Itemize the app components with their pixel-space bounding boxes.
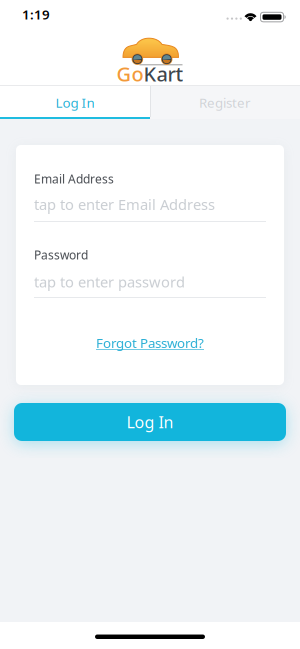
staticText: Log In <box>126 411 173 433</box>
staticText: Kart <box>143 60 183 87</box>
button[interactable]: Forgot Password? <box>16 334 284 352</box>
button[interactable]: Register <box>150 86 300 119</box>
staticText: Go <box>116 60 143 87</box>
staticText: Email Address <box>34 171 114 187</box>
staticText: tap to enter password <box>34 272 185 291</box>
staticText: 1:19 <box>22 5 50 23</box>
staticText: Forgot Password? <box>96 334 204 352</box>
staticText: Password <box>34 247 88 263</box>
staticText: tap to enter Email Address <box>34 194 215 214</box>
button[interactable]: Log In <box>0 86 150 119</box>
staticText: Register <box>199 94 251 111</box>
button[interactable]: Log In <box>14 403 286 441</box>
staticText: Log In <box>55 94 94 111</box>
button[interactable]: tap to enter Email Address <box>34 194 266 219</box>
button[interactable]: tap to enter password <box>34 272 266 297</box>
